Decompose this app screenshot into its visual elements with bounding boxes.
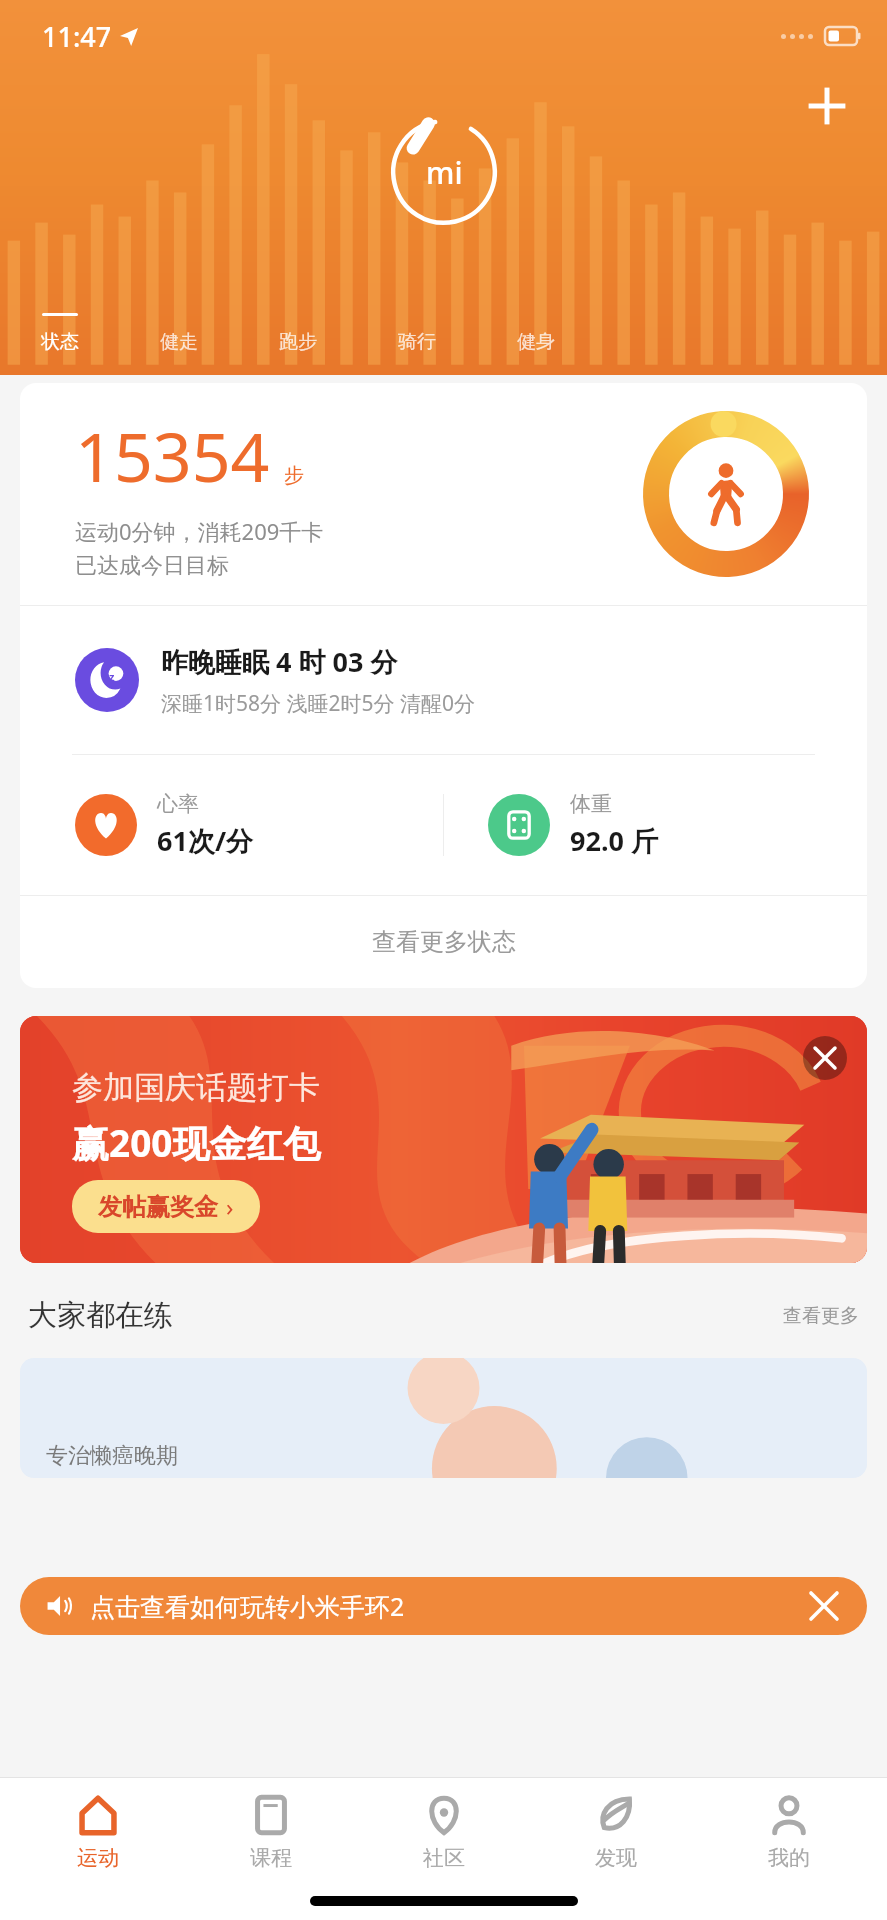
staticText: 92.0 斤 <box>570 822 658 859</box>
staticText: 状态 <box>41 330 79 354</box>
button[interactable]: 我的 <box>714 1794 864 1871</box>
staticText: 11:47 <box>42 18 112 55</box>
staticText: 深睡1时58分 浅睡2时5分 清醒0分 <box>161 689 475 718</box>
staticText: 赢200现金红包 <box>72 1117 321 1168</box>
button[interactable]: 心率 <box>75 755 443 895</box>
button[interactable]: z <box>75 606 867 754</box>
staticText: 点击查看如何玩转小米手环2 <box>90 1589 405 1623</box>
button[interactable]: 状态 <box>0 309 119 354</box>
button[interactable]: 查看更多状态 <box>20 896 867 988</box>
staticText: 发现 <box>595 1845 637 1871</box>
button[interactable]: 参加国庆话题打卡 <box>20 1016 867 1263</box>
button[interactable]: 点击查看如何玩转小米手环2 <box>20 1577 867 1635</box>
staticText: 健身 <box>517 330 555 354</box>
staticText: 心率 <box>157 791 199 817</box>
staticText: 专治懒癌晚期 <box>46 1442 178 1470</box>
staticText: z <box>109 669 115 684</box>
staticText: 跑步 <box>279 330 317 354</box>
button[interactable]: Close banner <box>803 1036 847 1080</box>
staticText: mi <box>426 152 463 193</box>
staticText: 运动 <box>77 1845 119 1871</box>
button[interactable]: 发帖赢奖金 <box>72 1180 260 1233</box>
staticText: 体重 <box>570 791 612 817</box>
staticText: 骑行 <box>398 330 436 354</box>
button[interactable]: 15354 <box>20 383 867 605</box>
button[interactable]: 社区 <box>369 1794 519 1871</box>
staticText: 参加国庆话题打卡 <box>72 1068 320 1107</box>
button[interactable]: 体重 <box>488 755 867 895</box>
staticText: 大家都在练 <box>28 1297 173 1334</box>
button[interactable]: 专治懒癌晚期 <box>20 1358 867 1478</box>
staticText: 昨晚睡眠 4 时 03 分 <box>161 643 398 680</box>
staticText: 查看更多状态 <box>372 927 516 957</box>
button[interactable]: 运动 <box>23 1794 173 1871</box>
staticText: 已达成今日目标 <box>75 552 229 580</box>
button[interactable]: 骑行 <box>357 309 476 354</box>
staticText: 步 <box>284 463 304 488</box>
staticText: › <box>226 1190 234 1223</box>
button[interactable]: Dismiss <box>807 1589 841 1623</box>
staticText: 我的 <box>768 1845 810 1871</box>
button[interactable]: 查看更多 <box>783 1304 859 1328</box>
button[interactable]: 跑步 <box>238 309 357 354</box>
staticText: 61次/分 <box>157 822 254 859</box>
staticText: 运动0分钟，消耗209千卡 <box>75 516 324 546</box>
staticText: 15354 <box>75 409 270 502</box>
button[interactable]: 发现 <box>541 1794 691 1871</box>
staticText: 发帖赢奖金 <box>98 1192 218 1222</box>
button[interactable]: 健走 <box>119 309 238 354</box>
button[interactable]: 健身 <box>476 309 595 354</box>
staticText: 查看更多 <box>783 1304 859 1328</box>
staticText: 健走 <box>160 330 198 354</box>
staticText: 课程 <box>250 1845 292 1871</box>
staticText: 社区 <box>423 1845 465 1871</box>
button[interactable]: 课程 <box>196 1794 346 1871</box>
button[interactable]: Add <box>799 78 855 134</box>
